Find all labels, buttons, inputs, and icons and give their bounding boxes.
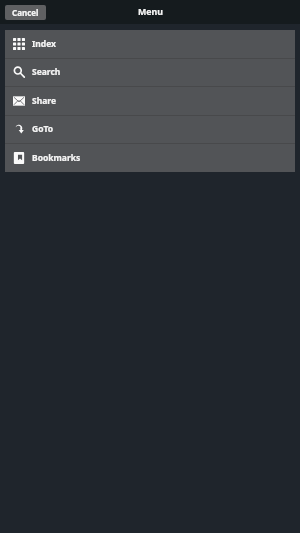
- button[interactable]: GoTo: [5, 115, 295, 143]
- button[interactable]: Share: [5, 87, 295, 115]
- staticText: Share: [32, 95, 57, 107]
- staticText: Search: [32, 66, 61, 78]
- staticText: Cancel: [12, 7, 39, 18]
- staticText: Index: [32, 38, 57, 50]
- staticText: Menu: [138, 6, 163, 18]
- button[interactable]: Cancel: [5, 5, 46, 20]
- button[interactable]: Index: [5, 30, 295, 58]
- staticText: Bookmarks: [32, 152, 81, 164]
- staticText: GoTo: [32, 123, 54, 135]
- button[interactable]: Search: [5, 58, 295, 86]
- button[interactable]: Bookmarks: [5, 144, 295, 172]
